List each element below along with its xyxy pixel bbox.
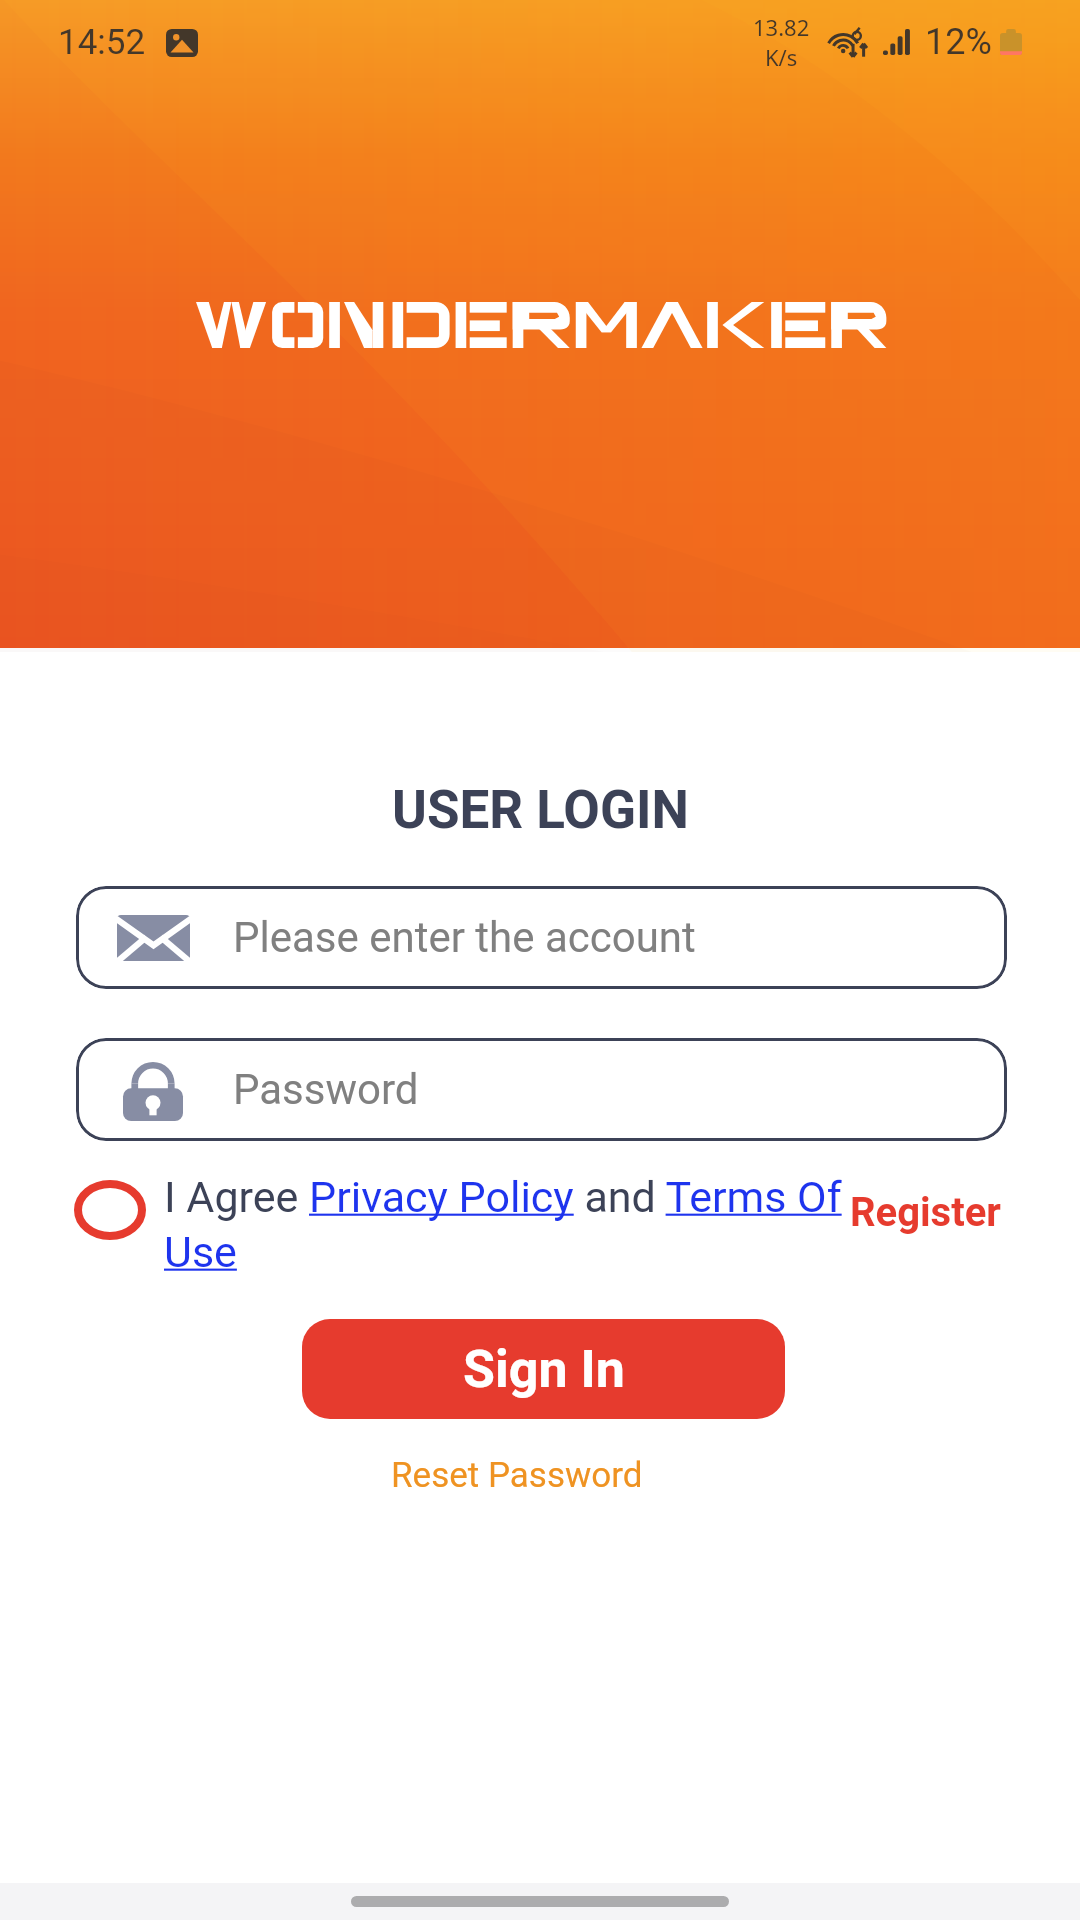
button[interactable]: Please enter the account (76, 886, 1007, 989)
staticText: Sign In (463, 1339, 625, 1400)
button[interactable]: Register (850, 1189, 1001, 1236)
button[interactable]: Reset Password (391, 1455, 643, 1496)
button[interactable]: I Agree Privacy Policy and Terms Of Use (164, 1172, 854, 1277)
staticText: USER LOGIN (392, 779, 689, 841)
button[interactable]: Agree to terms (70, 1176, 150, 1244)
staticText: 14:52 (58, 22, 146, 63)
staticText: Please enter the account (233, 913, 696, 962)
staticText: 12% (925, 21, 992, 63)
staticText: 13.82 (753, 12, 810, 42)
staticText: Password (233, 1065, 419, 1114)
button[interactable]: Sign In (302, 1319, 785, 1419)
button[interactable]: Password (76, 1038, 1007, 1141)
staticText: K/s (765, 42, 798, 72)
staticText: Reset Password (391, 1455, 643, 1496)
